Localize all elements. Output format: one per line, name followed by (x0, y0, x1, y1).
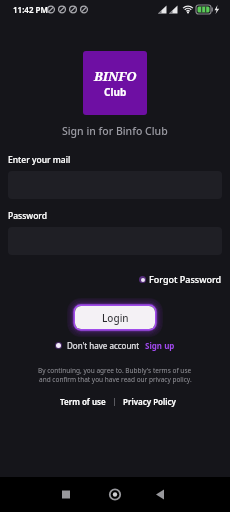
button[interactable]: Privacy Policy (123, 396, 176, 407)
staticText: Enter your mail (8, 154, 71, 166)
staticText: Sign in for Binfo Club (62, 124, 168, 138)
button[interactable]: Login (75, 306, 155, 329)
staticText: 11:42 PM (13, 4, 48, 15)
staticText: Login (102, 311, 129, 325)
staticText: Forgot Password (149, 273, 222, 285)
button[interactable] (150, 487, 166, 503)
staticText: By continuing, you agree to. Bubbly's te… (38, 366, 192, 375)
button[interactable]: Forgot Password (139, 273, 222, 285)
staticText: BINFO (94, 67, 137, 85)
button[interactable]: Don't have account (55, 340, 175, 351)
button[interactable] (54, 487, 70, 503)
staticText: Sign up (145, 340, 175, 351)
staticText: Club (104, 85, 127, 99)
staticText: Password (8, 210, 48, 222)
staticText: Don't have account (67, 340, 140, 351)
staticText: and confirm that you have read our priva… (39, 375, 192, 384)
button[interactable] (107, 487, 123, 503)
button[interactable]: Term of use (60, 396, 106, 407)
